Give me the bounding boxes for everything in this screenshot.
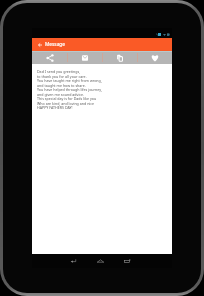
button[interactable]: Back: [59, 254, 87, 268]
button[interactable]: Recents: [114, 254, 141, 268]
staticText: Who are kind, and loving and nice: [37, 101, 95, 106]
staticText: and given me sound advice.: [37, 92, 85, 97]
button[interactable]: Favorite: [137, 51, 172, 64]
staticText: Dad I send you greetings,: [37, 69, 81, 74]
button[interactable]: Copy: [102, 51, 137, 64]
button[interactable]: Email: [67, 51, 102, 64]
button[interactable]: Home: [87, 254, 114, 268]
staticText: You have taught me right from wrong,: [37, 78, 102, 83]
staticText: Message: [45, 41, 65, 48]
staticText: You have helped through lifes journey,: [37, 87, 102, 92]
staticText: This special day is for Dads like you: [37, 96, 97, 101]
button[interactable]: Back: [36, 41, 43, 48]
staticText: and taught me how to share.: [37, 83, 86, 88]
staticText: to thank you for all your care.: [37, 74, 87, 79]
staticText: HAPPY FATHERS DAY!: [37, 105, 73, 110]
button[interactable]: Share: [32, 51, 67, 64]
